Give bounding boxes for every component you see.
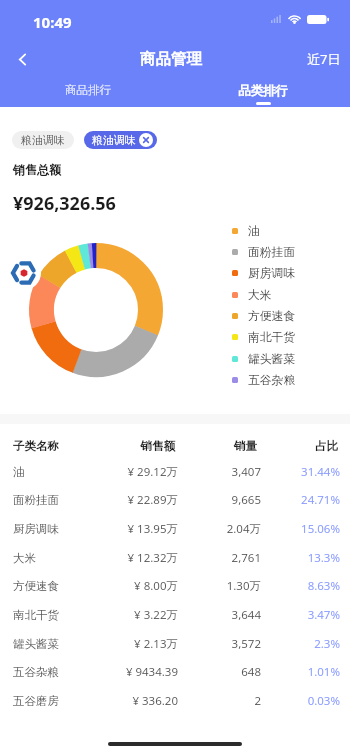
button[interactable]: 油: [0, 461, 350, 483]
staticText: 油: [13, 465, 79, 479]
staticText: 占比: [257, 439, 338, 453]
staticText: 粮油调味: [92, 133, 136, 147]
staticText: 近7日: [307, 50, 341, 68]
button[interactable]: 近7日: [298, 40, 350, 78]
staticText: 五谷杂粮: [13, 665, 79, 679]
button[interactable]: 品类排行: [175, 78, 350, 107]
staticText: 厨房调味: [13, 522, 79, 536]
staticText: ¥ 12.32万: [79, 550, 178, 566]
staticText: 方便速食: [248, 309, 296, 324]
staticText: 3,407: [178, 464, 261, 480]
staticText: 31.44%: [261, 464, 340, 480]
staticText: 品类排行: [238, 83, 288, 99]
staticText: 2: [178, 693, 261, 709]
staticText: 2,761: [178, 550, 261, 566]
button[interactable]: 面粉挂面: [232, 243, 296, 261]
button[interactable]: 大米: [232, 286, 272, 304]
button[interactable]: 商品排行: [0, 78, 175, 107]
staticText: ¥ 13.95万: [79, 521, 178, 537]
staticText: 销售总额: [13, 162, 61, 177]
staticText: 15.06%: [261, 521, 340, 537]
staticText: 1.30万: [178, 578, 261, 594]
staticText: 南北干货: [13, 608, 79, 622]
button[interactable]: Back: [0, 40, 44, 78]
button[interactable]: 面粉挂面: [0, 489, 350, 511]
staticText: ¥ 29.12万: [79, 464, 178, 480]
button[interactable]: 大米: [0, 547, 350, 569]
staticText: 厨房调味: [248, 266, 296, 281]
staticText: 8.63%: [261, 578, 340, 594]
staticText: ¥ 2.13万: [79, 636, 178, 652]
staticText: 罐头酱菜: [13, 637, 79, 651]
staticText: ¥ 22.89万: [79, 492, 178, 508]
staticText: ¥ 9434.39: [79, 664, 178, 680]
button[interactable]: 粮油调味: [84, 131, 157, 149]
staticText: 大米: [248, 288, 272, 303]
staticText: 0.03%: [261, 693, 340, 709]
staticText: 大米: [13, 551, 79, 565]
staticText: 面粉挂面: [248, 245, 296, 260]
staticText: ¥ 3.22万: [79, 607, 178, 623]
button[interactable]: 南北干货: [0, 604, 350, 626]
staticText: 商品排行: [65, 83, 111, 97]
staticText: 罐头酱菜: [248, 352, 296, 367]
staticText: 面粉挂面: [13, 493, 79, 507]
button[interactable]: 南北干货: [232, 328, 296, 346]
button[interactable]: 粮油调味: [12, 131, 74, 149]
staticText: 销量: [175, 439, 257, 453]
staticText: 油: [248, 224, 260, 239]
button[interactable]: 方便速食: [232, 307, 296, 325]
button[interactable]: 五谷磨房: [0, 690, 350, 712]
staticText: 五谷杂粮: [248, 373, 296, 388]
button[interactable]: 五谷杂粮: [0, 661, 350, 683]
staticText: 商品管理: [140, 49, 202, 69]
button[interactable]: 方便速食: [0, 575, 350, 597]
staticText: 2.3%: [261, 636, 340, 652]
staticText: 粮油调味: [21, 133, 65, 147]
staticText: 13.3%: [261, 550, 340, 566]
button[interactable]: 油: [232, 222, 260, 240]
staticText: 南北干货: [248, 330, 296, 345]
staticText: 9,665: [178, 492, 261, 508]
staticText: 10:49: [33, 12, 72, 32]
button[interactable]: 厨房调味: [232, 264, 296, 282]
button[interactable]: 罐头酱菜: [0, 633, 350, 655]
staticText: 2.04万: [178, 521, 261, 537]
staticText: 3,572: [178, 636, 261, 652]
staticText: ¥926,326.56: [13, 191, 116, 216]
staticText: 方便速食: [13, 579, 79, 593]
staticText: 3,644: [178, 607, 261, 623]
staticText: 销售额: [79, 439, 175, 453]
staticText: 648: [178, 664, 261, 680]
staticText: 24.71%: [261, 492, 340, 508]
staticText: 1.01%: [261, 664, 340, 680]
staticText: 五谷磨房: [13, 694, 79, 708]
button[interactable]: 罐头酱菜: [232, 350, 296, 368]
staticText: ¥ 336.20: [79, 693, 178, 709]
staticText: 3.47%: [261, 607, 340, 623]
button[interactable]: 厨房调味: [0, 518, 350, 540]
button[interactable]: 五谷杂粮: [232, 371, 296, 389]
staticText: ¥ 8.00万: [79, 578, 178, 594]
staticText: 子类名称: [13, 439, 79, 453]
